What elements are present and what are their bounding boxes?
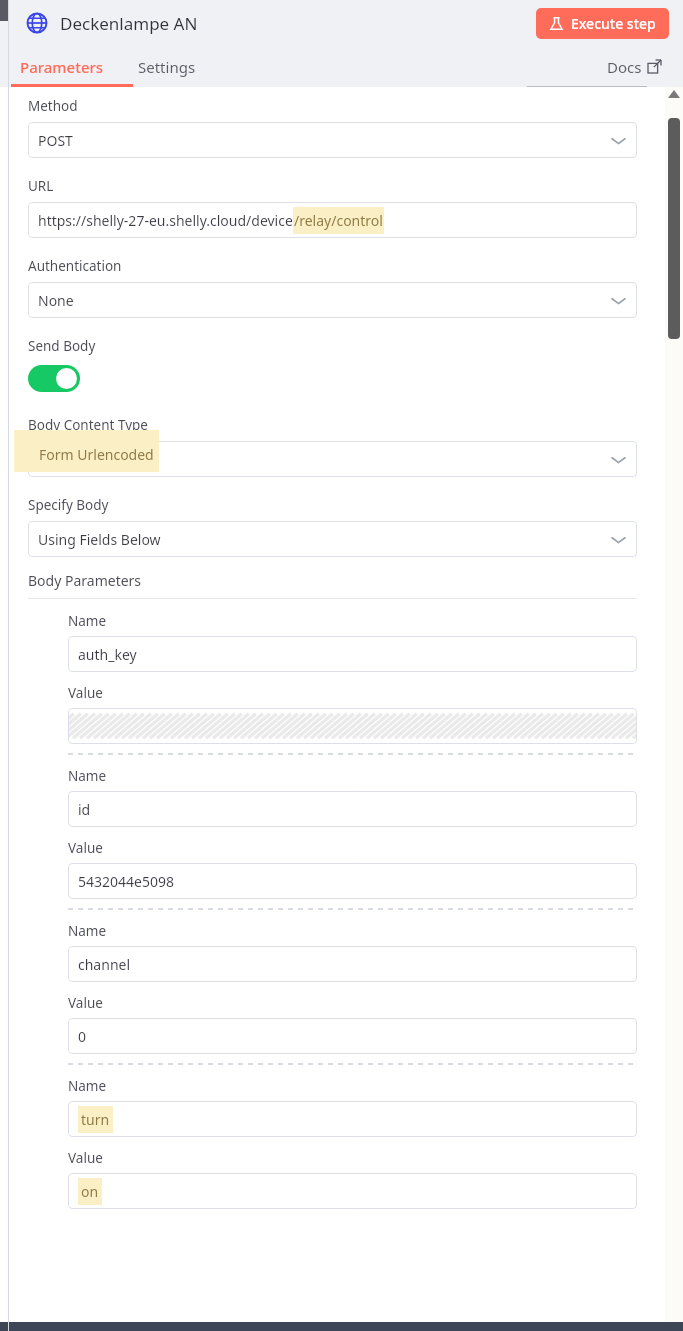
- staticText: Execute step: [571, 14, 656, 33]
- button[interactable]: Using Fields Below: [28, 521, 637, 557]
- staticText: POST: [38, 131, 73, 150]
- staticText: Settings: [138, 57, 196, 77]
- staticText: Docs: [607, 57, 642, 77]
- staticText: Parameters: [20, 57, 104, 77]
- staticText: Name: [68, 1077, 107, 1095]
- staticText: Name: [68, 767, 107, 785]
- staticText: Name: [68, 612, 107, 630]
- staticText: auth_key: [78, 645, 137, 664]
- button[interactable]: turn: [68, 1101, 637, 1137]
- staticText: Specify Body: [28, 496, 109, 514]
- button[interactable]: on: [68, 1173, 637, 1209]
- staticText: Value: [68, 839, 103, 857]
- button[interactable]: id: [68, 791, 637, 827]
- staticText: Body Content Type: [28, 416, 148, 434]
- staticText: https://shelly-27-eu.shelly.cloud/device: [38, 211, 293, 230]
- staticText: channel: [78, 955, 131, 974]
- staticText: Authentication: [28, 257, 122, 275]
- button[interactable]: Settings: [124, 46, 210, 87]
- staticText: 0: [78, 1027, 87, 1046]
- button[interactable]: [68, 708, 637, 744]
- staticText: Value: [68, 684, 103, 702]
- staticText: on: [81, 1182, 99, 1201]
- staticText: None: [38, 291, 74, 310]
- staticText: Form Urlencoded: [39, 445, 154, 464]
- button[interactable]: 5432044e5098: [68, 863, 637, 899]
- staticText: Using Fields Below: [38, 530, 161, 549]
- button[interactable]: https://shelly-27-eu.shelly.cloud/device: [28, 202, 637, 238]
- button[interactable]: auth_key: [68, 636, 637, 672]
- button[interactable]: Docs: [585, 46, 683, 87]
- staticText: Value: [68, 1149, 103, 1167]
- button[interactable]: Parameters: [0, 46, 124, 87]
- staticText: /relay/control: [294, 211, 383, 230]
- button[interactable]: POST: [28, 122, 637, 158]
- staticText: Value: [68, 994, 103, 1012]
- button[interactable]: 0: [68, 1018, 637, 1054]
- staticText: Method: [28, 97, 78, 115]
- button[interactable]: channel: [68, 946, 637, 982]
- staticText: id: [78, 800, 91, 819]
- button[interactable]: Execute step: [536, 8, 669, 39]
- staticText: Send Body: [28, 337, 96, 355]
- staticText: Deckenlampe AN: [60, 12, 198, 35]
- staticText: 5432044e5098: [78, 872, 174, 891]
- button[interactable]: None: [28, 282, 637, 318]
- staticText: turn: [81, 1110, 110, 1129]
- other: HTTP node: [26, 12, 48, 34]
- staticText: URL: [28, 177, 54, 195]
- button[interactable]: Send Body toggle: [28, 365, 80, 392]
- staticText: Body Parameters: [28, 571, 142, 590]
- button[interactable]: [28, 441, 637, 477]
- staticText: Name: [68, 922, 107, 940]
